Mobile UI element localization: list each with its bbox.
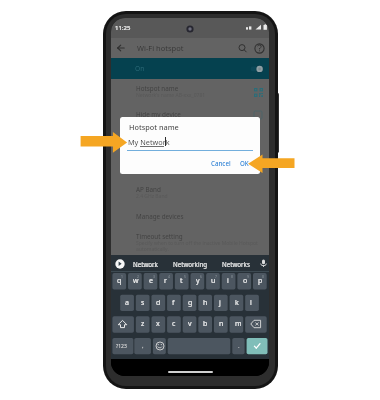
staticText: h [203,298,208,308]
button[interactable]: Help [253,42,266,55]
staticText: Hotspot name [129,122,179,132]
staticText: Wi-Fi hotspot [137,43,184,53]
staticText: 0 [262,274,264,279]
staticText: v [188,319,192,329]
staticText: 5 [184,274,186,279]
staticText: x [156,319,160,329]
button[interactable]: On [111,58,269,79]
staticText: l [250,298,252,308]
staticText: Hide my device [136,110,181,119]
staticText: . [238,342,240,350]
staticText: On [135,64,145,73]
staticText: j [219,298,221,308]
staticText: r [164,276,167,286]
staticText: c [172,319,176,329]
staticText: 11:25 [115,24,131,32]
staticText: 8 [231,274,233,279]
staticText: i [227,276,229,286]
staticText: 9 [247,274,249,279]
staticText: t [180,276,183,286]
staticText: d [156,298,161,308]
staticText: y [196,276,200,286]
staticText: , [142,342,144,350]
staticText: 6 [200,274,202,279]
button[interactable]: OK [236,157,252,169]
staticText: OK [240,159,249,167]
staticText: f [172,298,175,308]
staticText: ?123 [116,343,127,350]
staticText: 7 [215,274,217,279]
staticText: b [203,319,208,329]
staticText: u [211,276,216,286]
staticText: e [149,276,153,286]
staticText: AP Band [136,185,161,194]
button[interactable]: Hotspot name [111,83,269,100]
staticText: a [125,298,129,308]
button[interactable]: Timeout setting [111,231,269,253]
staticText: q [117,276,122,286]
staticText: m [235,319,242,329]
staticText: Network [133,260,158,268]
staticText: s [141,298,145,308]
staticText: p [258,276,263,286]
staticText: Networks [222,260,250,268]
button[interactable]: Back [114,41,128,55]
staticText: 4 [168,274,170,279]
staticText: Hotspot name [136,84,179,93]
staticText: z [141,319,145,329]
button[interactable]: Search [236,42,249,55]
button[interactable]: Manage devices [111,211,269,224]
staticText: g [188,298,193,308]
button[interactable]: Hide my device [111,108,269,121]
staticText: k [235,298,239,308]
staticText: 3 [153,274,155,279]
staticText: o [243,276,248,286]
staticText: Timeout setting [136,232,183,241]
staticText: Manage devices [136,212,184,221]
staticText: 1 [121,274,123,279]
staticText: w [133,276,139,286]
staticText: My Network [128,137,170,147]
staticText: 2 [137,274,139,279]
staticText: n [219,319,224,329]
button[interactable]: Cancel [209,157,232,169]
staticText: Cancel [211,159,231,167]
staticText: Networking [173,260,208,268]
